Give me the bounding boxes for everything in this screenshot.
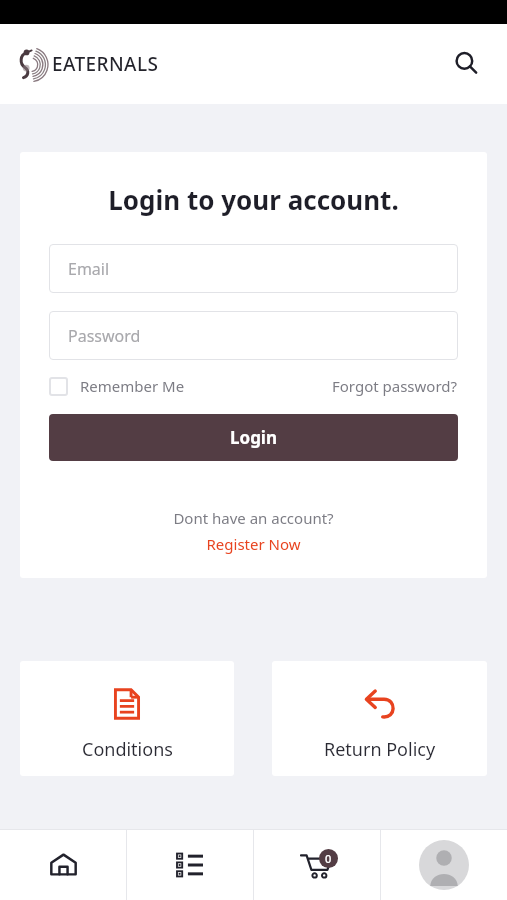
staticText: Dont have an account? — [49, 508, 458, 528]
button[interactable]: Profile — [381, 829, 507, 900]
button[interactable]: Conditions — [20, 661, 234, 776]
button[interactable]: Search — [445, 42, 489, 86]
button[interactable]: Return Policy — [272, 661, 487, 776]
button[interactable]: Forgot password? — [332, 376, 458, 396]
staticText: Login — [230, 426, 278, 449]
button[interactable]: Password — [49, 311, 458, 360]
button[interactable]: Register Now — [49, 534, 458, 554]
staticText: Return Policy — [324, 737, 436, 762]
staticText: Register Now — [206, 534, 301, 554]
button[interactable]: Remember Me — [49, 376, 185, 396]
staticText: Login to your account. — [49, 182, 458, 217]
button[interactable]: Categories — [127, 829, 253, 900]
button[interactable]: Login — [49, 414, 458, 461]
button[interactable]: Cart — [254, 829, 380, 900]
button[interactable]: Email — [49, 244, 458, 293]
staticText: Email — [68, 258, 110, 280]
staticText: 0 — [325, 851, 332, 866]
button[interactable]: Home — [0, 829, 126, 900]
staticText: Forgot password? — [332, 376, 458, 396]
staticText: EATERNALS — [52, 51, 159, 77]
staticText: Remember Me — [80, 376, 185, 396]
staticText: Conditions — [82, 737, 173, 762]
staticText: Password — [68, 325, 141, 347]
